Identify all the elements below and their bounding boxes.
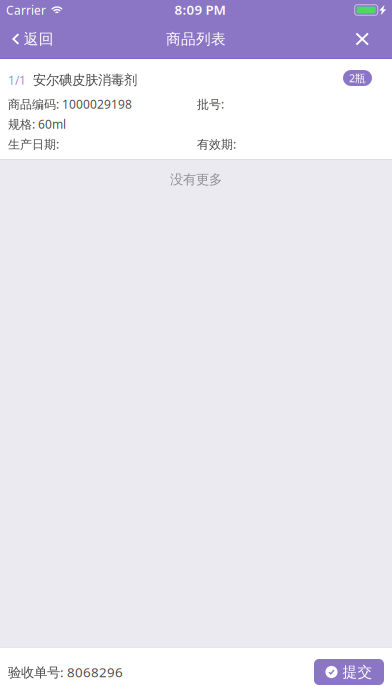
staticText: 安尔碘皮肤消毒剂 bbox=[33, 72, 137, 88]
staticText: 生产日期: bbox=[8, 136, 59, 152]
staticText: 有效期: bbox=[197, 136, 236, 152]
staticText: 8:09 PM bbox=[174, 1, 225, 18]
staticText: 商品列表 bbox=[166, 30, 226, 48]
button[interactable]: Close bbox=[341, 19, 392, 58]
staticText: 验收单号: 8068296 bbox=[8, 663, 123, 681]
staticText: 1/1 bbox=[8, 72, 26, 88]
staticText: 规格: 60ml bbox=[8, 116, 66, 132]
staticText: 商品编码: 1000029198 bbox=[8, 96, 132, 112]
staticText: 返回 bbox=[24, 30, 54, 48]
button[interactable]: 返回 bbox=[0, 19, 66, 58]
staticText: 2瓶 bbox=[349, 71, 366, 85]
button[interactable]: 提交 bbox=[314, 659, 384, 685]
staticText: 没有更多 bbox=[170, 171, 222, 188]
staticText: 批号: bbox=[197, 96, 224, 112]
staticText: 提交 bbox=[343, 663, 373, 681]
staticText: Carrier bbox=[6, 2, 46, 18]
